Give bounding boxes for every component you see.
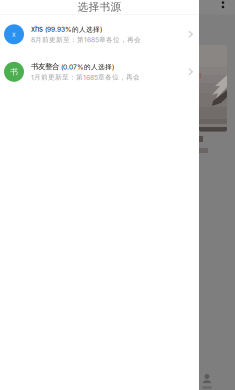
staticText: 书友整合 (0.07%的人选择) xyxy=(31,62,114,71)
staticText: x xyxy=(12,30,16,38)
button[interactable]: x xyxy=(0,16,199,53)
staticText: 选择书源 xyxy=(77,0,121,14)
staticText: 8月前更新至：第1685章各位，再会 xyxy=(31,36,141,44)
button[interactable]: More options xyxy=(199,0,229,13)
staticText: xhs (99.93%的人选择) xyxy=(31,25,102,34)
staticText: 书 xyxy=(10,67,18,77)
button[interactable]: Profile xyxy=(199,373,219,390)
button[interactable]: 书 xyxy=(0,53,199,90)
staticText: 1月前更新至：第1685章各位，再会 xyxy=(31,73,140,82)
